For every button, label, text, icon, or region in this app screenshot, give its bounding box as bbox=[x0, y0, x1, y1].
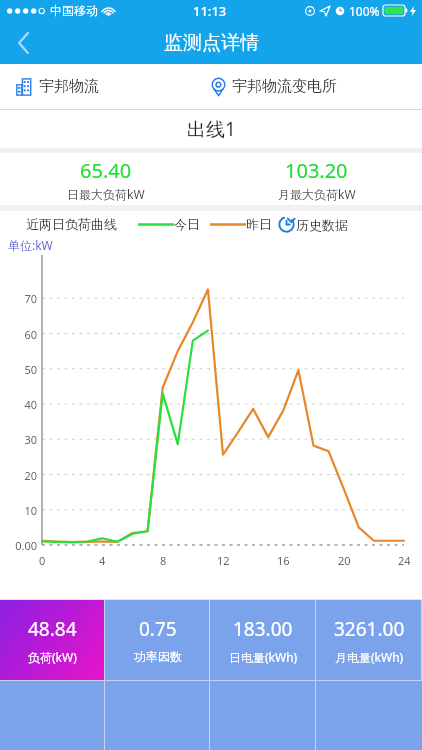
button[interactable]: 3261.00 bbox=[316, 600, 422, 680]
staticText: 70 bbox=[24, 291, 37, 306]
button[interactable]: 65.40 bbox=[0, 153, 211, 205]
staticText: 月电量(kWh) bbox=[335, 649, 404, 665]
button[interactable] bbox=[210, 680, 316, 750]
button[interactable]: 103.20 bbox=[211, 153, 422, 205]
staticText: 24 bbox=[398, 553, 411, 568]
button[interactable]: 183.00 bbox=[210, 600, 316, 680]
staticText: 65.40 bbox=[80, 157, 132, 184]
staticText: 30 bbox=[24, 432, 37, 447]
button[interactable]: 宇邦物流 bbox=[16, 64, 211, 109]
staticText: 月最大负荷kW bbox=[278, 186, 356, 202]
staticText: 今日 bbox=[174, 216, 200, 232]
staticText: 60 bbox=[24, 327, 37, 342]
staticText: 昨日 bbox=[246, 216, 272, 232]
button[interactable] bbox=[0, 680, 105, 750]
staticText: 183.00 bbox=[233, 616, 293, 642]
staticText: 中国移动 bbox=[50, 3, 98, 18]
staticText: 0.00 bbox=[15, 538, 37, 553]
staticText: 宇邦物流变电所 bbox=[232, 77, 337, 96]
button[interactable]: 0.75 bbox=[105, 600, 210, 680]
staticText: 日最大负荷kW bbox=[67, 186, 145, 202]
staticText: 8 bbox=[160, 553, 167, 568]
staticText: 10 bbox=[24, 503, 37, 518]
button[interactable]: Back bbox=[0, 21, 46, 64]
button[interactable] bbox=[316, 680, 422, 750]
staticText: 宇邦物流 bbox=[39, 77, 99, 96]
staticText: 3261.00 bbox=[334, 616, 405, 642]
staticText: 40 bbox=[24, 397, 37, 412]
staticText: 103.20 bbox=[285, 157, 348, 184]
staticText: 48.84 bbox=[28, 616, 77, 642]
button[interactable]: 历史数据 bbox=[278, 216, 348, 233]
staticText: 12 bbox=[217, 553, 230, 568]
staticText: 近两日负荷曲线 bbox=[26, 216, 117, 232]
staticText: 50 bbox=[24, 362, 37, 377]
staticText: 单位:kW bbox=[8, 237, 53, 253]
button[interactable] bbox=[105, 680, 210, 750]
button[interactable]: 48.84 bbox=[0, 600, 105, 680]
staticText: 4 bbox=[99, 553, 106, 568]
staticText: 20 bbox=[24, 468, 37, 483]
staticText: 日电量(kWh) bbox=[229, 649, 298, 665]
staticText: 监测点详情 bbox=[164, 31, 259, 55]
staticText: 16 bbox=[277, 553, 290, 568]
staticText: 100% bbox=[349, 3, 380, 19]
staticText: 11:13 bbox=[193, 2, 227, 20]
staticText: 功率因数 bbox=[134, 649, 182, 664]
staticText: 20 bbox=[338, 553, 351, 568]
staticText: 0 bbox=[39, 553, 46, 568]
staticText: 历史数据 bbox=[296, 217, 348, 233]
staticText: 0.75 bbox=[139, 616, 177, 642]
button[interactable]: 宇邦物流变电所 bbox=[211, 64, 422, 109]
staticText: 负荷(kW) bbox=[28, 649, 77, 665]
staticText: 出线1 bbox=[187, 116, 236, 142]
